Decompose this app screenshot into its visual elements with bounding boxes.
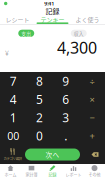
button[interactable]: 5 xyxy=(26,90,52,108)
staticText: 6 xyxy=(62,91,69,107)
staticText: 支出 xyxy=(21,30,31,37)
button[interactable]: 4 xyxy=(0,90,26,108)
button[interactable]: 記録 xyxy=(42,164,63,179)
staticText: 8 xyxy=(36,73,43,89)
staticText: よく使う xyxy=(75,15,99,22)
staticText: 収入 xyxy=(74,30,84,37)
staticText: テンキー xyxy=(40,15,64,22)
staticText: 4,300 xyxy=(57,37,97,58)
staticText: 1 xyxy=(10,110,17,126)
staticText: 次へ xyxy=(45,150,59,159)
staticText: ÷ xyxy=(89,75,94,87)
button[interactable]: − xyxy=(79,108,105,127)
button[interactable]: × xyxy=(79,90,105,108)
staticText: 4 xyxy=(10,91,17,107)
button[interactable]: カテゴリ選択 xyxy=(0,148,25,161)
button[interactable]: レシート xyxy=(0,15,35,24)
staticText: − xyxy=(89,111,94,124)
button[interactable]: 6 xyxy=(52,90,79,108)
staticText: カテゴリ選択 xyxy=(3,156,21,161)
button[interactable]: 1 xyxy=(0,108,26,127)
button[interactable]: 9 xyxy=(52,72,79,90)
button[interactable]: 8 xyxy=(26,72,52,90)
button[interactable]: 支出 xyxy=(18,30,34,37)
staticText: レポート xyxy=(65,172,81,178)
staticText: 00 xyxy=(7,129,19,143)
button[interactable]: 2 xyxy=(26,108,52,127)
staticText: 5 xyxy=(36,91,43,107)
staticText: その他 xyxy=(88,172,100,178)
staticText: 7 xyxy=(10,73,17,89)
staticText: 記録 xyxy=(48,172,56,178)
button[interactable]: レポート xyxy=(63,164,84,179)
button[interactable]: + xyxy=(79,127,105,145)
button[interactable]: 00 xyxy=(0,127,26,145)
staticText: . xyxy=(64,128,67,144)
button[interactable]: よく使う xyxy=(70,15,105,24)
staticText: ¥ xyxy=(5,49,9,58)
staticText: ホーム xyxy=(4,172,16,178)
staticText: 9 xyxy=(62,73,69,89)
button[interactable]: 3 xyxy=(52,108,79,127)
button[interactable]: ÷ xyxy=(79,72,105,90)
staticText: レシート xyxy=(5,15,29,22)
button[interactable]: 次へ xyxy=(25,148,80,160)
button[interactable]: 0 xyxy=(26,127,52,145)
staticText: 2 xyxy=(36,110,43,126)
button[interactable]: その他 xyxy=(84,164,105,179)
button[interactable]: 収入 xyxy=(71,30,87,37)
button[interactable]: テンキー xyxy=(35,15,70,24)
button[interactable]: ホーム xyxy=(0,164,21,179)
staticText: 9:41 xyxy=(44,0,54,7)
button[interactable]: 7 xyxy=(0,72,26,90)
staticText: 記録 xyxy=(45,6,59,16)
staticText: 家計簿 xyxy=(25,172,37,178)
staticText: + xyxy=(89,130,94,142)
button[interactable]: 削除 xyxy=(85,152,105,157)
staticText: 0 xyxy=(36,128,43,144)
button[interactable]: 家計簿 xyxy=(21,164,42,179)
staticText: 3 xyxy=(62,110,69,126)
button[interactable]: . xyxy=(52,127,79,145)
staticText: × xyxy=(89,93,94,106)
